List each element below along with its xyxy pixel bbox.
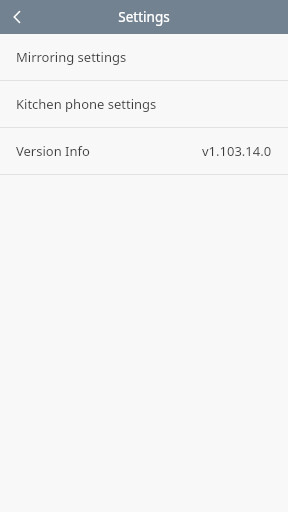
staticText: Mirroring settings: [16, 48, 127, 66]
button[interactable]: Version Info: [0, 128, 288, 174]
button[interactable]: Kitchen phone settings: [0, 81, 288, 127]
staticText: Kitchen phone settings: [16, 95, 157, 113]
button[interactable]: Back: [0, 0, 34, 34]
button[interactable]: Mirroring settings: [0, 34, 288, 80]
staticText: v1.103.14.0: [202, 142, 272, 160]
staticText: Version Info: [16, 142, 90, 160]
staticText: Settings: [118, 8, 170, 26]
